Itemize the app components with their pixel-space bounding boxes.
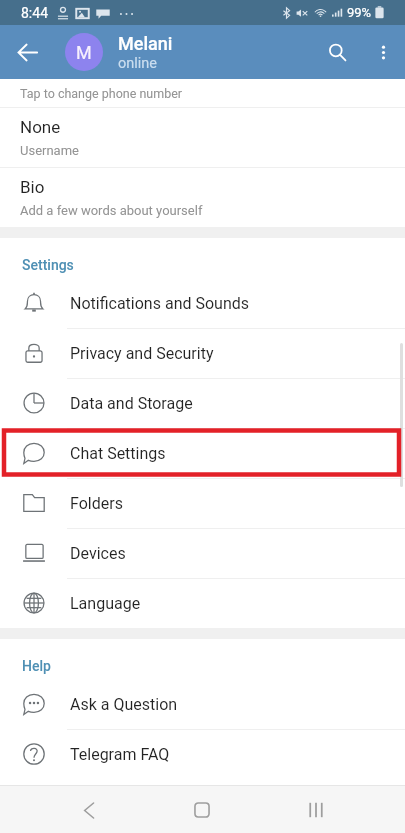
button[interactable]: Bio (0, 168, 405, 227)
button[interactable]: Home (180, 788, 224, 832)
staticText: Bio (20, 177, 45, 197)
button[interactable]: Data and Storage (0, 378, 405, 428)
button[interactable]: Telegram FAQ (0, 729, 405, 779)
button[interactable]: Chat Settings (0, 428, 405, 478)
staticText: Settings (22, 257, 74, 273)
button[interactable]: Tap to change phone number (0, 79, 405, 107)
staticText: Help (22, 658, 51, 674)
staticText: 99% (347, 5, 372, 20)
staticText: 8:44 (21, 5, 48, 21)
button[interactable]: More options (361, 30, 405, 74)
staticText: Notifications and Sounds (70, 294, 250, 313)
staticText: Chat Settings (70, 444, 166, 463)
staticText: Privacy and Security (70, 344, 214, 363)
staticText: Username (20, 143, 79, 158)
button[interactable]: Search (313, 28, 361, 76)
staticText: Folders (70, 494, 123, 513)
staticText: online (118, 55, 158, 72)
button[interactable]: Recent apps (294, 788, 338, 832)
staticText: Data and Storage (70, 394, 193, 413)
staticText: Add a few words about yourself (20, 203, 203, 218)
staticText: Melani (118, 33, 173, 54)
staticText: Telegram FAQ (70, 745, 170, 764)
staticText: Language (70, 594, 141, 613)
button[interactable]: Devices (0, 528, 405, 578)
staticText: Devices (70, 544, 126, 563)
button[interactable]: Language (0, 578, 405, 628)
staticText: Ask a Question (70, 695, 178, 714)
button[interactable]: Back (67, 788, 111, 832)
button[interactable]: Back (3, 28, 51, 76)
button[interactable]: Notifications and Sounds (0, 278, 405, 328)
button[interactable]: Ask a Question (0, 679, 405, 729)
button[interactable]: None (0, 108, 405, 167)
staticText: None (20, 117, 61, 137)
staticText: Tap to change phone number (20, 86, 183, 101)
button[interactable]: Folders (0, 478, 405, 528)
button[interactable]: Privacy and Security (0, 328, 405, 378)
staticText: M (76, 42, 92, 63)
